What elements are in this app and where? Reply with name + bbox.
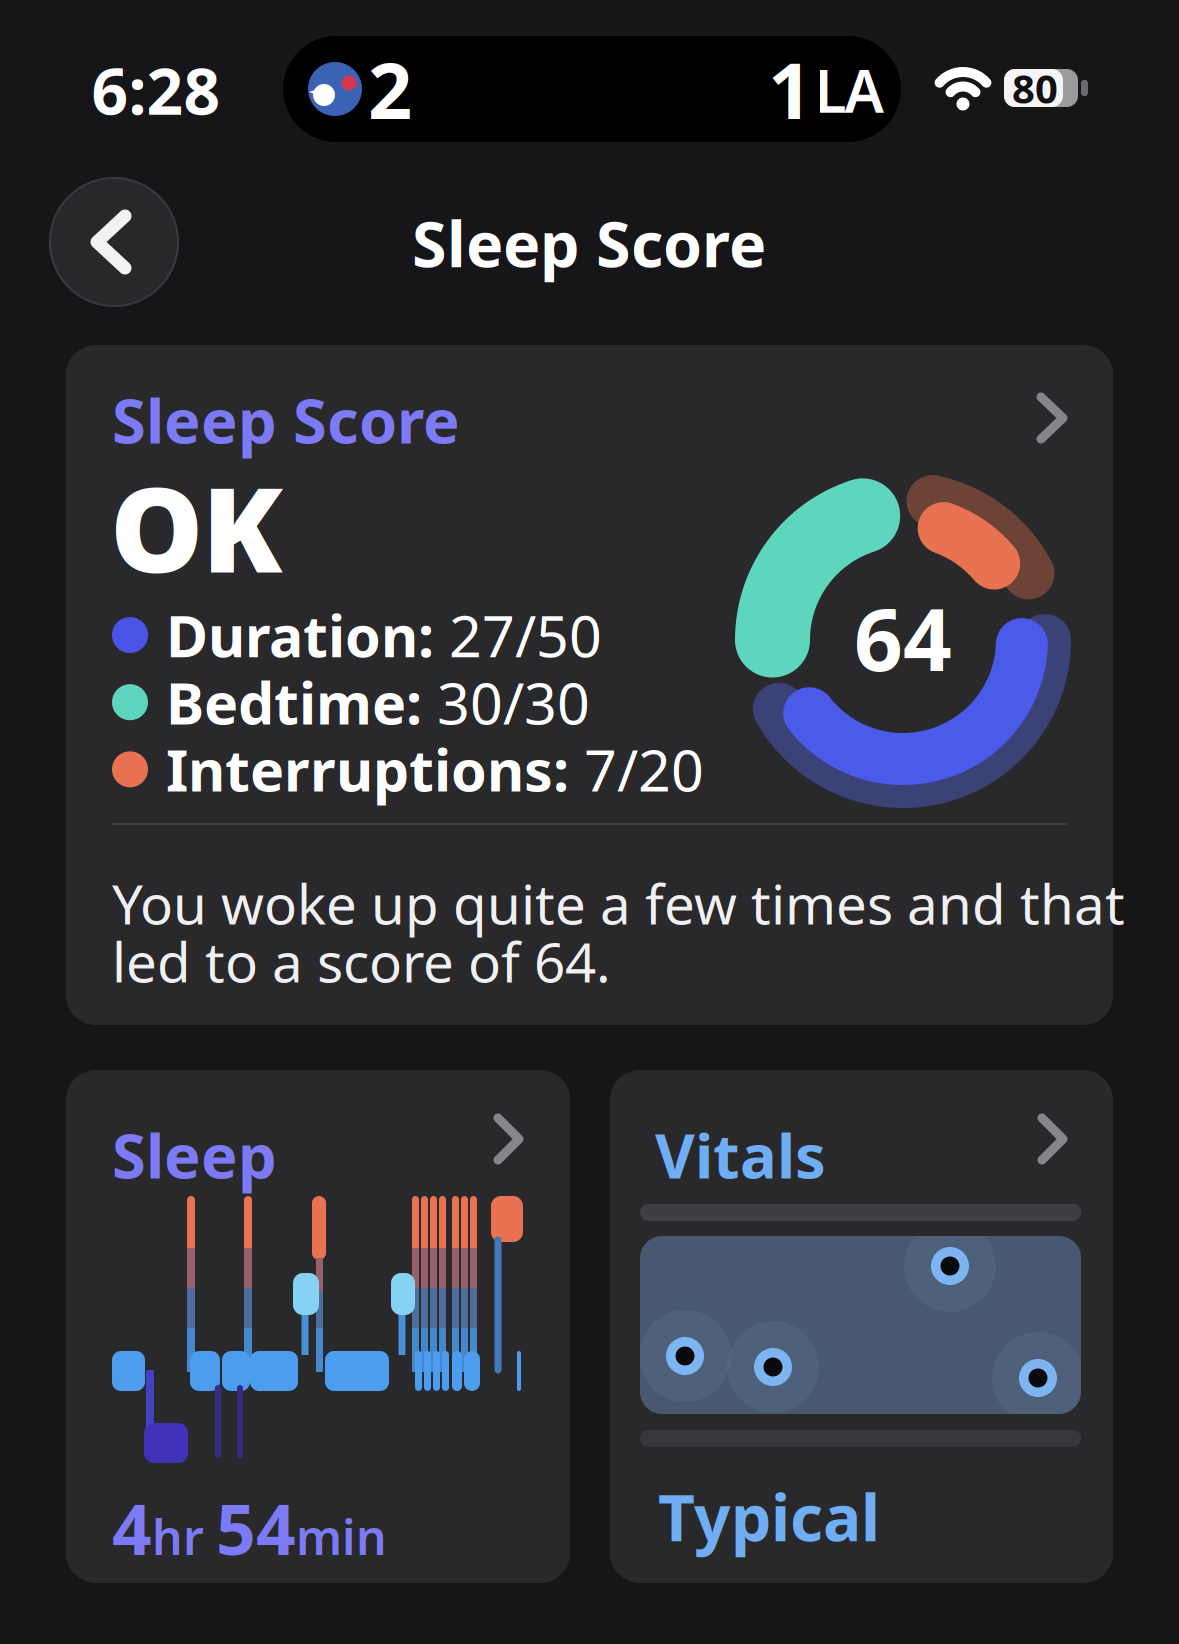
staticText: 1 <box>768 38 812 140</box>
staticText: 80 <box>1012 61 1058 114</box>
staticText: You woke up quite a few times and that <box>112 867 1125 940</box>
staticText: OK <box>110 449 283 605</box>
button[interactable]: Live Activity: Blue Jays 2, Dodgers 1 <box>283 36 901 142</box>
staticText: 4hr 54min <box>112 1482 387 1574</box>
button[interactable]: Back <box>49 177 179 307</box>
button[interactable]: Vitals details <box>610 1070 1113 1583</box>
button[interactable]: Sleep details <box>66 1070 570 1583</box>
staticText: 64 <box>854 581 952 695</box>
staticText: Typical <box>658 1474 880 1559</box>
staticText: Sleep Score <box>412 201 766 285</box>
staticText: Vitals <box>655 1114 826 1195</box>
staticText: 6:28 <box>91 47 220 132</box>
staticText: Sleep <box>112 1114 277 1195</box>
staticText: Interruptions: 7/20 <box>166 731 704 807</box>
staticText: Sleep Score <box>112 379 460 460</box>
staticText: LA <box>814 51 883 129</box>
staticText: Bedtime: 30/30 <box>166 664 590 740</box>
staticText: 2 <box>368 38 412 140</box>
button[interactable]: Sleep Score details <box>66 345 1113 1025</box>
staticText: Duration: 27/50 <box>166 597 602 673</box>
staticText: led to a score of 64. <box>112 925 611 998</box>
